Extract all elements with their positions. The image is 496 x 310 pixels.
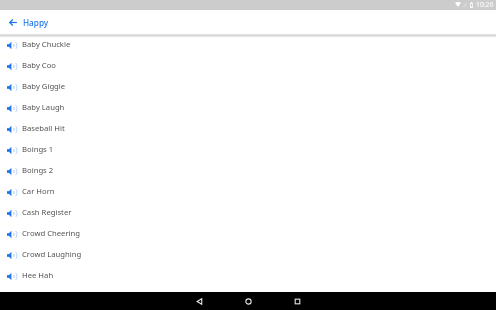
staticText: 10:26 bbox=[476, 0, 494, 9]
button[interactable]: Baby Giggle bbox=[0, 75, 496, 96]
button[interactable]: Baby Chuckle bbox=[0, 33, 496, 54]
button[interactable]: Boings 1 bbox=[0, 138, 496, 159]
staticText: Baby Coo bbox=[22, 60, 56, 70]
button[interactable]: Recents bbox=[273, 292, 322, 310]
staticText: Boings 2 bbox=[22, 165, 54, 175]
button[interactable]: Car Horn bbox=[0, 180, 496, 201]
button[interactable]: Back bbox=[175, 292, 224, 310]
button[interactable]: Boings 2 bbox=[0, 159, 496, 180]
staticText: Car Horn bbox=[22, 186, 55, 196]
button[interactable]: Baseball Hit bbox=[0, 117, 496, 138]
button[interactable]: Baby Laugh bbox=[0, 96, 496, 117]
staticText: Crowd Laughing bbox=[22, 249, 82, 259]
staticText: Cash Register bbox=[22, 207, 72, 217]
button[interactable]: Hee Hah bbox=[0, 264, 496, 285]
staticText: Baby Chuckle bbox=[22, 39, 71, 49]
staticText: Baseball Hit bbox=[22, 123, 65, 133]
button[interactable]: Baby Coo bbox=[0, 54, 496, 75]
button[interactable]: Crowd Laughing bbox=[0, 243, 496, 264]
staticText: Hee Hah bbox=[22, 270, 54, 280]
button[interactable]: Home bbox=[224, 292, 273, 310]
staticText: Happy bbox=[23, 17, 49, 28]
staticText: Baby Laugh bbox=[22, 102, 65, 112]
staticText: Crowd Cheering bbox=[22, 228, 81, 238]
button[interactable]: Crowd Cheering bbox=[0, 222, 496, 243]
staticText: Baby Giggle bbox=[22, 81, 66, 91]
button[interactable]: Cash Register bbox=[0, 201, 496, 222]
staticText: Boings 1 bbox=[22, 144, 54, 154]
button[interactable]: Back bbox=[0, 10, 23, 34]
